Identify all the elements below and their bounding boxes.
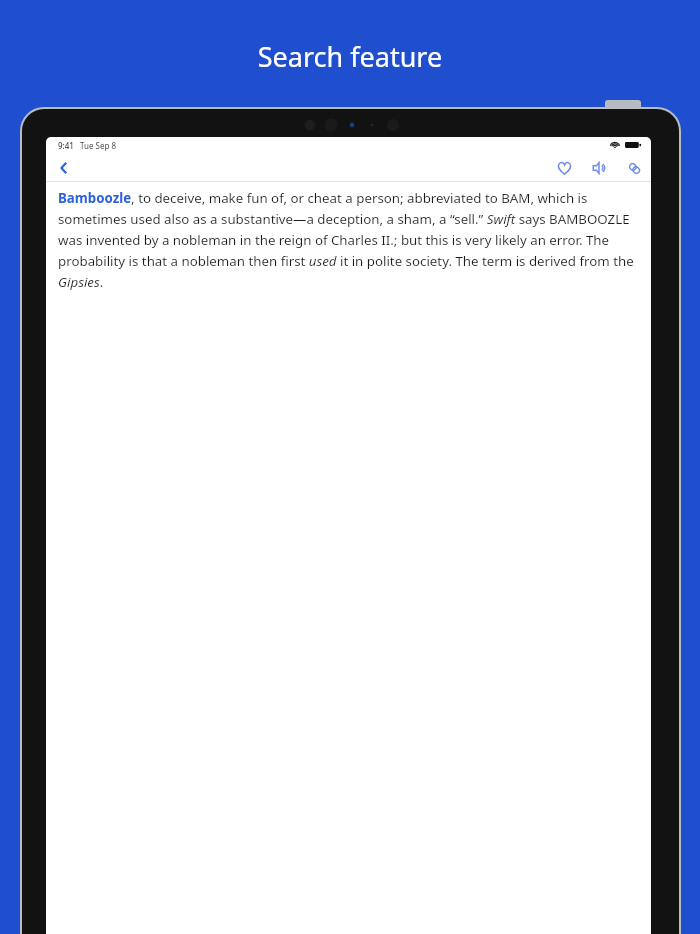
staticText: Search feature [0,38,700,75]
button[interactable]: Copy link [620,154,648,182]
button[interactable]: Favorite [550,154,578,182]
button[interactable]: Play audio [585,154,613,182]
staticText: Tue Sep 8 [80,140,117,151]
staticText: Bamboozle, to deceive, make fun of, or c… [58,189,639,291]
button[interactable]: Back [50,154,78,182]
staticText: 9:41 [58,140,74,151]
